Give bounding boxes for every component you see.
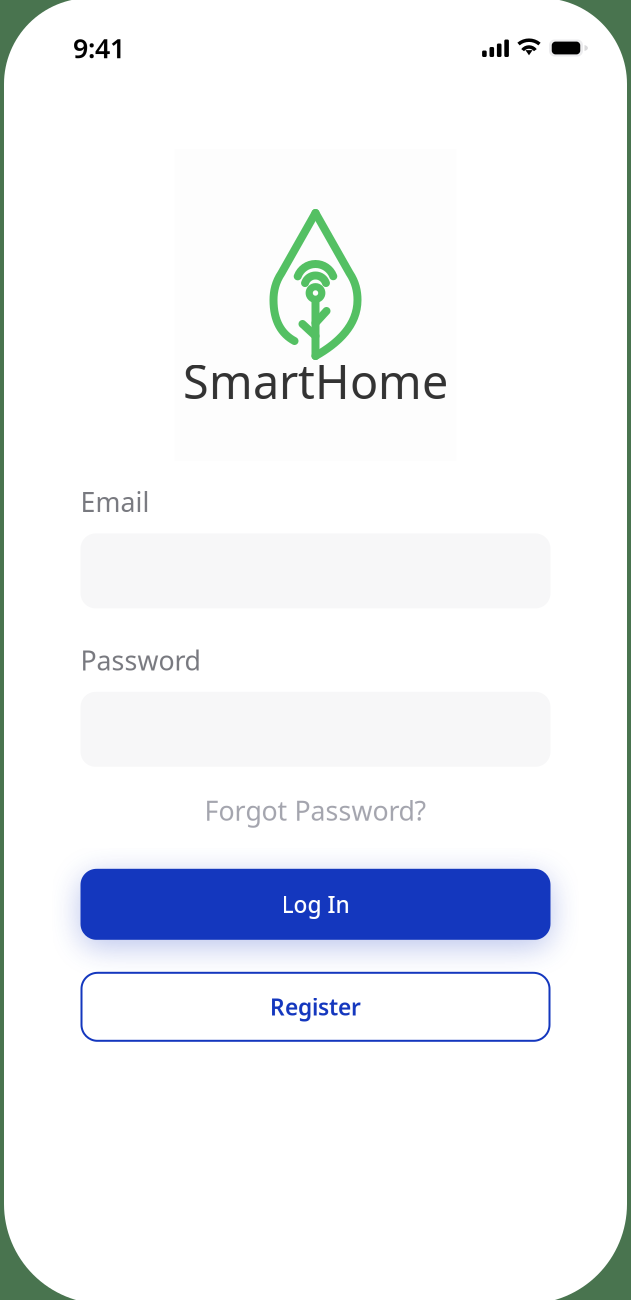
staticText: Log In: [281, 889, 349, 919]
staticText: Register: [270, 992, 361, 1022]
staticText: 9:41: [73, 30, 125, 66]
staticText: Password: [80, 642, 200, 678]
staticText: Forgot Password?: [204, 793, 426, 828]
staticText: SmartHome: [183, 350, 448, 412]
button[interactable]: Forgot Password?: [80, 793, 550, 828]
button[interactable]: Register: [80, 972, 550, 1042]
button[interactable]: Log In: [80, 869, 550, 940]
staticText: Email: [80, 484, 149, 519]
